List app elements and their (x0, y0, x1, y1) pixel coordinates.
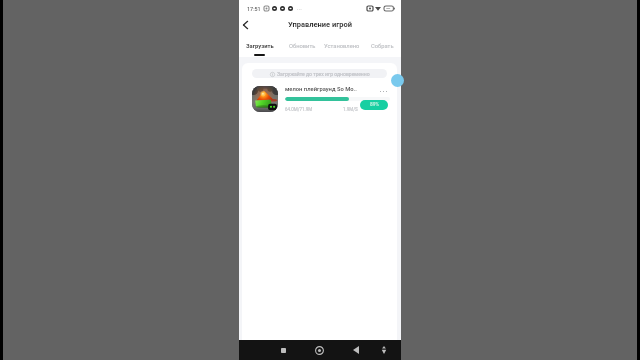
staticText: 64.0M/71.9M (285, 107, 313, 112)
button[interactable]: Hide navigation bar (377, 343, 391, 357)
staticText: Управление игрой (288, 20, 353, 29)
button[interactable]: Support chat (391, 74, 404, 87)
staticText: Собрать (371, 43, 394, 50)
staticText: Загружайте до трех игр одновременно (277, 71, 370, 77)
staticText: ··· (297, 5, 302, 12)
button[interactable]: Recent apps (276, 343, 290, 357)
button[interactable]: 89% (360, 100, 388, 110)
staticText: Обновить (289, 43, 316, 50)
staticText: мелон плейграунд So Mo.. (285, 86, 357, 93)
button[interactable]: Home (312, 343, 326, 357)
button[interactable]: Установлено (321, 43, 363, 50)
button[interactable]: Собрать (368, 43, 397, 50)
staticText: 1.9M/S (343, 107, 358, 112)
staticText: 17:51 (247, 6, 261, 12)
button[interactable]: Загрузить (243, 43, 277, 50)
staticText: Установлено (324, 43, 360, 50)
button[interactable]: Загружайте до трех игр одновременно (252, 69, 387, 78)
staticText: Загрузить (246, 43, 274, 50)
staticText: 89% (370, 102, 379, 108)
button[interactable]: Back (349, 343, 363, 357)
button[interactable]: Back (239, 18, 252, 31)
button[interactable]: Обновить (286, 43, 319, 50)
button[interactable]: More options (377, 85, 389, 97)
